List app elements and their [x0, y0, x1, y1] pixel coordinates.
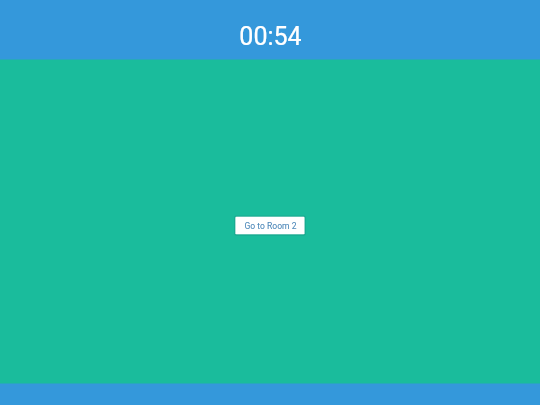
staticText: 00:54	[239, 22, 302, 51]
button[interactable]: Timer 00:54	[0, 0, 540, 60]
button[interactable]: Go to Room 2	[235, 216, 305, 235]
staticText: Go to Room 2	[244, 221, 297, 231]
